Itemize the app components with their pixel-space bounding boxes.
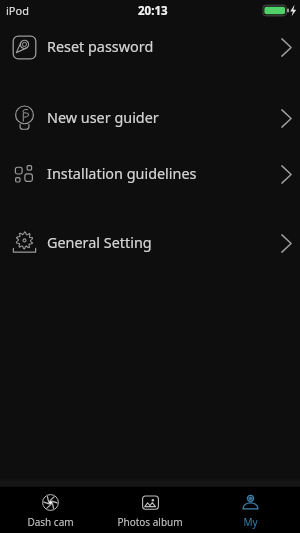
staticText: Photos album (117, 515, 183, 529)
button[interactable]: Dash cam (0, 487, 100, 529)
staticText: Dash cam (27, 515, 74, 529)
button[interactable]: Reset password (0, 21, 300, 73)
staticText: My (243, 515, 258, 529)
staticText: Installation guidelines (47, 164, 197, 184)
staticText: Reset password (47, 37, 154, 57)
staticText: 20:13 (138, 3, 168, 19)
button[interactable]: My (200, 487, 300, 529)
button[interactable]: Installation guidelines (0, 148, 300, 200)
button[interactable]: Photos album (100, 487, 200, 529)
staticText: iPod (6, 3, 29, 18)
button[interactable]: General Setting (0, 217, 300, 269)
staticText: New user guider (47, 108, 159, 128)
button[interactable]: New user guider (0, 92, 300, 144)
staticText: General Setting (47, 233, 152, 253)
